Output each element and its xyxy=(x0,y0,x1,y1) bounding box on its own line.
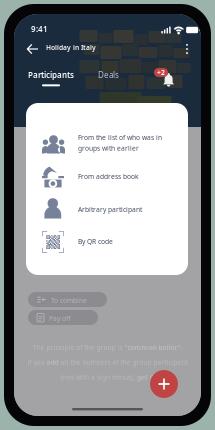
staticText: +2 xyxy=(157,68,165,77)
staticText: (red with a sign minus), xyxy=(61,373,137,382)
staticText: The principle of the group is xyxy=(32,343,124,352)
button[interactable]: Notifications xyxy=(154,66,184,92)
staticText: Participants xyxy=(28,70,74,80)
button[interactable]: Participants xyxy=(28,68,74,88)
button[interactable]: Back xyxy=(24,40,42,58)
button[interactable]: Add arbitrary participant xyxy=(26,183,188,215)
staticText: From address book xyxy=(78,172,139,181)
button[interactable]: Add by QR code xyxy=(26,215,188,247)
staticText: From the list of who was in xyxy=(78,133,162,142)
staticText: If you xyxy=(27,358,46,367)
button[interactable]: Add from address book xyxy=(26,151,188,183)
button[interactable]: Deals xyxy=(98,68,119,88)
staticText: Holiday in Italy xyxy=(46,43,96,52)
staticText: groups with earlier xyxy=(78,144,139,153)
button[interactable]: More options xyxy=(180,41,194,57)
staticText: get 0 xyxy=(137,373,154,382)
staticText: By QR code xyxy=(78,237,113,246)
staticText: To combine xyxy=(51,296,87,305)
button[interactable]: Pay off xyxy=(28,310,98,325)
staticText: "common boiler". xyxy=(124,343,182,352)
staticText: Deals xyxy=(98,70,119,80)
staticText: Arbitrary participant xyxy=(78,205,142,214)
button[interactable]: Add from group list xyxy=(26,117,188,149)
staticText: all the numbers of the group participent xyxy=(58,358,187,367)
staticText: add xyxy=(46,358,58,367)
staticText: Pay off xyxy=(49,314,71,323)
button[interactable]: Add xyxy=(149,369,179,399)
button[interactable]: To combine xyxy=(28,292,107,307)
staticText: 9:41 xyxy=(31,23,48,34)
